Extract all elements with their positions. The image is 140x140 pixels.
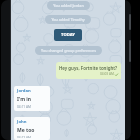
staticText: 04:11 AM — [17, 105, 31, 109]
staticText: 04:03 AM — [100, 72, 114, 76]
staticText: TODAY — [61, 32, 75, 38]
staticText: You added Jordan — [53, 3, 84, 8]
other: Power — [129, 40, 131, 62]
other: Volume up — [129, 14, 131, 30]
staticText: Jordan — [17, 88, 31, 94]
staticText: John — [17, 119, 27, 125]
button[interactable]: John — [14, 117, 50, 140]
staticText: Me too — [17, 127, 35, 134]
staticText: Hey guys, Fortnite tonight? — [59, 65, 118, 71]
button[interactable]: TODAY — [54, 29, 82, 41]
button[interactable]: You added Jordan — [47, 1, 90, 10]
button[interactable]: Hey guys, Fortnite tonight? — [56, 62, 121, 79]
staticText: You added Timothy — [51, 17, 85, 22]
button[interactable]: You added Timothy — [45, 15, 91, 24]
button[interactable]: Jordan — [14, 86, 50, 111]
staticText: 04:12 AM — [17, 136, 31, 138]
staticText: I'm in — [17, 96, 32, 103]
button[interactable]: You changed group preferences — [35, 46, 102, 55]
staticText: You changed group preferences — [41, 48, 96, 53]
